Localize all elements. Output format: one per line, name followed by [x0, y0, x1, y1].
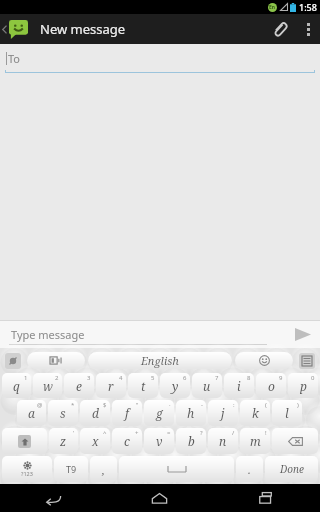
button[interactable]: k: [240, 400, 270, 426]
button[interactable]: l: [272, 400, 302, 426]
button[interactable]: Type message: [0, 321, 286, 348]
staticText: b: [188, 433, 195, 449]
staticText: q: [13, 378, 20, 394]
staticText: To: [8, 51, 21, 66]
staticText: ?123: [21, 470, 33, 477]
staticText: r: [108, 378, 114, 394]
staticText: 8: [247, 374, 251, 382]
button[interactable]: Send: [286, 321, 320, 348]
staticText: 1:58: [299, 1, 317, 13]
staticText: :: [233, 401, 235, 409]
button[interactable]: Attach: [262, 14, 296, 44]
button[interactable]: t: [128, 373, 158, 398]
button[interactable]: x: [80, 428, 110, 454]
button[interactable]: a: [17, 400, 46, 426]
staticText: 3: [87, 374, 91, 382]
staticText: 5: [151, 374, 155, 382]
staticText: 6: [183, 374, 187, 382]
button[interactable]: Settings: [27, 352, 85, 369]
button[interactable]: Voice input: [2, 351, 24, 370]
button[interactable]: o: [256, 373, 286, 398]
staticText: 0: [311, 374, 315, 382]
button[interactable]: z: [49, 428, 78, 454]
button[interactable]: ,: [90, 456, 117, 482]
button[interactable]: c: [112, 428, 142, 454]
button[interactable]: English: [88, 352, 232, 369]
staticText: Type message: [11, 327, 85, 342]
staticText: t: [141, 378, 146, 394]
staticText: English: [141, 353, 179, 368]
staticText: =: [167, 429, 171, 437]
button[interactable]: b: [176, 428, 206, 454]
button[interactable]: Recent apps: [213, 484, 320, 512]
button[interactable]: .: [236, 456, 263, 482]
button[interactable]: i: [224, 373, 254, 398]
button[interactable]: [272, 428, 318, 454]
staticText: “: [136, 401, 139, 409]
button[interactable]: More options: [296, 14, 320, 44]
staticText: s: [60, 405, 66, 421]
button[interactable]: w: [33, 373, 62, 398]
staticText: g: [156, 405, 163, 421]
staticText: +: [135, 429, 139, 437]
staticText: En: [269, 4, 276, 11]
button[interactable]: p: [288, 373, 318, 398]
staticText: New message: [40, 20, 126, 38]
staticText: k: [252, 405, 259, 421]
staticText: o: [268, 378, 275, 394]
button[interactable]: d: [80, 400, 110, 426]
button[interactable]: j: [208, 400, 238, 426]
staticText: f: [125, 405, 129, 421]
staticText: n: [219, 433, 227, 449]
button[interactable]: To: [0, 44, 320, 73]
button[interactable]: q: [2, 373, 31, 398]
button[interactable]: f: [112, 400, 142, 426]
button[interactable]: Emoji: [235, 352, 293, 369]
staticText: $: [103, 401, 107, 409]
button[interactable]: r: [96, 373, 126, 398]
button[interactable]: g: [144, 400, 174, 426]
button[interactable]: [119, 456, 234, 482]
staticText: 1: [24, 374, 28, 382]
button[interactable]: u: [192, 373, 222, 398]
button[interactable]: m: [240, 428, 270, 454]
staticText: -: [201, 401, 203, 409]
staticText: !: [265, 429, 267, 437]
staticText: ,: [102, 462, 105, 477]
staticText: z: [60, 433, 67, 449]
button[interactable]: Handwriting: [296, 351, 318, 370]
staticText: @: [37, 401, 43, 409]
staticText: w: [43, 378, 53, 394]
button[interactable]: e: [64, 373, 94, 398]
staticText: a: [28, 405, 35, 421]
staticText: e: [76, 378, 82, 394]
staticText: 4: [119, 374, 123, 382]
staticText: T9: [66, 463, 77, 475]
button[interactable]: h: [176, 400, 206, 426]
button[interactable]: [2, 428, 47, 454]
staticText: m: [250, 433, 261, 449]
button[interactable]: s: [48, 400, 78, 426]
staticText: x: [92, 433, 99, 449]
staticText: u: [203, 378, 211, 394]
staticText: Done: [280, 462, 304, 476]
button[interactable]: Done: [265, 456, 318, 482]
button[interactable]: T9: [54, 456, 88, 482]
button[interactable]: ?123: [2, 456, 52, 482]
button[interactable]: Home: [106, 484, 213, 512]
staticText: (: [265, 401, 267, 409]
button[interactable]: Navigate up: [0, 14, 32, 44]
button[interactable]: Back: [0, 484, 106, 512]
staticText: p: [300, 378, 307, 394]
button[interactable]: y: [160, 373, 190, 398]
staticText: j: [221, 405, 225, 421]
staticText: ·: [169, 401, 171, 409]
staticText: 2: [55, 374, 59, 382]
button[interactable]: n: [208, 428, 238, 454]
staticText: d: [92, 405, 99, 421]
staticText: ?: [200, 429, 203, 437]
staticText: *: [71, 401, 75, 409]
staticText: 7: [215, 374, 219, 382]
staticText: 9: [279, 374, 283, 382]
button[interactable]: v: [144, 428, 174, 454]
